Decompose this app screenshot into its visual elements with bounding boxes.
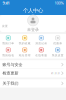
button[interactable]: 检查更新 bbox=[0, 69, 66, 77]
staticText: 账号与安全 bbox=[2, 62, 22, 67]
button[interactable]: 我的订单 bbox=[0, 34, 16, 46]
button[interactable]: 优惠券 bbox=[49, 34, 66, 46]
button[interactable]: 我的收藏 bbox=[16, 34, 33, 46]
staticText: 我的收藏 bbox=[19, 42, 31, 45]
staticText: 100% bbox=[54, 0, 63, 6]
button[interactable]: 地址管理 bbox=[16, 46, 33, 58]
staticText: 设置 bbox=[2, 24, 8, 28]
staticText: 优惠券 bbox=[53, 42, 62, 45]
button[interactable]: 关于我们 bbox=[0, 79, 66, 87]
button[interactable]: 浏览记录 bbox=[33, 34, 49, 46]
staticText: 我的钱包 bbox=[2, 54, 14, 57]
staticText: 我的订单 bbox=[2, 42, 14, 45]
button[interactable]: 系统设置 bbox=[49, 46, 66, 58]
staticText: 在线客服 bbox=[35, 54, 47, 57]
staticText: 未登录 bbox=[27, 27, 39, 32]
staticText: 关于我们 bbox=[2, 81, 18, 86]
staticText: 个人中心 bbox=[23, 7, 43, 14]
staticText: 地址管理 bbox=[19, 54, 31, 57]
staticText: 检查更新 bbox=[2, 71, 18, 76]
staticText: 9:41 bbox=[2, 0, 9, 6]
button[interactable]: 账号与安全 bbox=[0, 60, 66, 69]
staticText: 浏览记录 bbox=[35, 42, 47, 45]
button[interactable]: 我的钱包 bbox=[0, 46, 16, 58]
staticText: v1.0.0 bbox=[51, 71, 60, 75]
staticText: 系统设置 bbox=[52, 54, 64, 57]
button[interactable]: 在线客服 bbox=[33, 46, 49, 58]
